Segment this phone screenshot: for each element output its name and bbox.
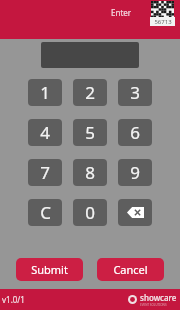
button[interactable]: 2 bbox=[73, 79, 107, 106]
staticText: v1.0/1 bbox=[2, 294, 25, 305]
button[interactable]: C bbox=[28, 199, 62, 226]
staticText: Cancel bbox=[113, 262, 148, 277]
button[interactable]: 9 bbox=[118, 159, 152, 186]
staticText: 1 bbox=[40, 81, 50, 104]
staticText: 9 bbox=[130, 161, 140, 184]
staticText: EVENT SOLUTIONS bbox=[140, 303, 167, 307]
button[interactable]: 3 bbox=[118, 79, 152, 106]
staticText: 56713 bbox=[154, 18, 172, 26]
button[interactable]: 0 bbox=[73, 199, 107, 226]
button[interactable]: 7 bbox=[28, 159, 62, 186]
staticText: 4 bbox=[40, 121, 50, 144]
staticText: 5 bbox=[85, 121, 95, 144]
button[interactable]: Submit bbox=[16, 258, 83, 281]
button[interactable]: Cancel bbox=[97, 258, 164, 281]
button[interactable]: 4 bbox=[28, 119, 62, 146]
button[interactable]: QR code badge bbox=[150, 1, 175, 26]
staticText: 8 bbox=[85, 161, 95, 184]
staticText: 3 bbox=[130, 81, 140, 104]
button[interactable]: 8 bbox=[73, 159, 107, 186]
staticText: 0 bbox=[85, 201, 95, 224]
staticText: Submit bbox=[31, 262, 68, 277]
staticText: showcare bbox=[140, 292, 177, 303]
button[interactable]: 5 bbox=[73, 119, 107, 146]
button[interactable]: 1 bbox=[28, 79, 62, 106]
button[interactable]: 6 bbox=[118, 119, 152, 146]
staticText: Enter bbox=[111, 7, 132, 18]
staticText: 2 bbox=[85, 81, 95, 104]
staticText: C bbox=[40, 201, 51, 224]
staticText: 6 bbox=[130, 121, 140, 144]
staticText: 7 bbox=[40, 161, 50, 184]
button[interactable]: Backspace bbox=[118, 199, 152, 226]
